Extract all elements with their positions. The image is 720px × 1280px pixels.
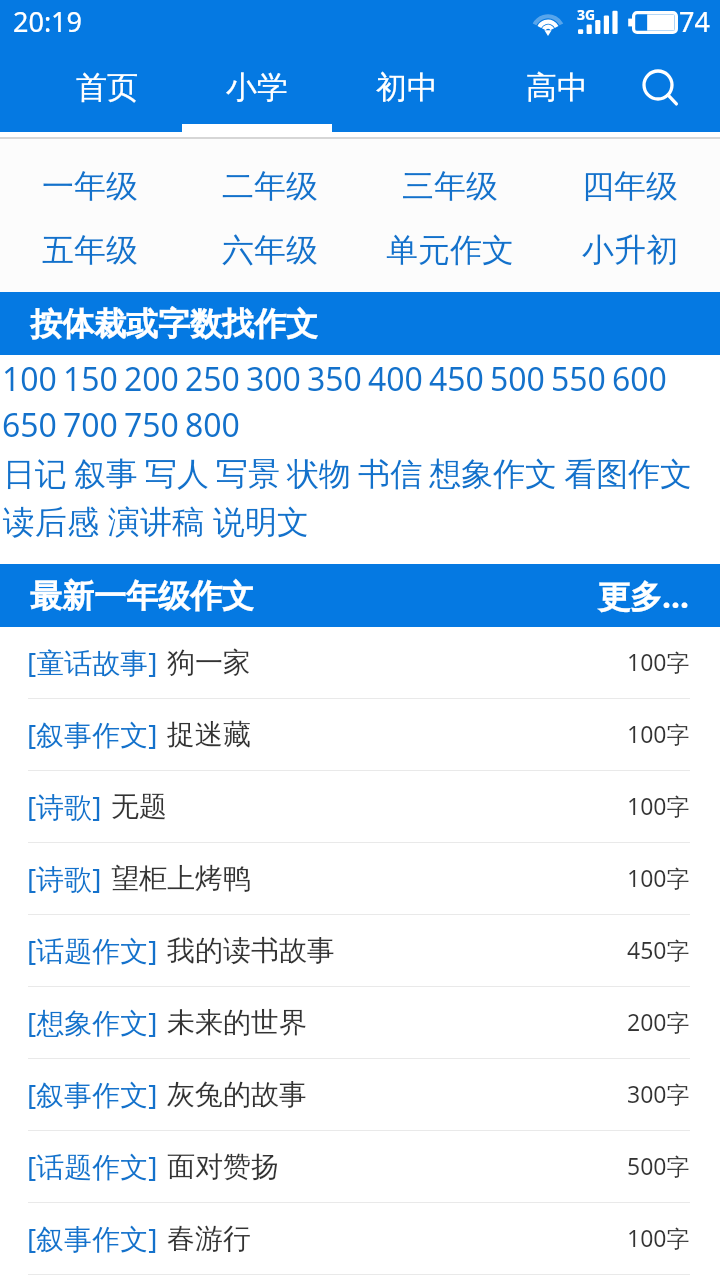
staticText: 四年级 xyxy=(582,166,678,206)
staticText: 最新一年级作文 xyxy=(30,576,254,616)
staticText: 600 xyxy=(612,357,667,401)
staticText: [话题作文] xyxy=(27,931,158,969)
button[interactable]: 小学 xyxy=(182,50,332,132)
button[interactable]: [诗歌] xyxy=(0,771,720,843)
staticText: 写人 xyxy=(145,454,209,494)
button[interactable]: 500 xyxy=(490,357,545,401)
button[interactable]: 100 xyxy=(2,357,57,401)
staticText: 写景 xyxy=(216,454,280,494)
button[interactable]: [叙事作文] xyxy=(0,1059,720,1131)
button[interactable]: 单元作文 xyxy=(360,218,540,282)
staticText: 450字 xyxy=(627,934,690,965)
button[interactable]: 350 xyxy=(307,357,362,401)
staticText: 250 xyxy=(185,357,240,401)
staticText: 演讲稿 xyxy=(108,502,204,542)
staticText: 300字 xyxy=(627,1078,690,1109)
staticText: 五年级 xyxy=(42,230,138,270)
button[interactable]: 想象作文 xyxy=(429,454,557,494)
staticText: 春游行 xyxy=(167,1221,251,1256)
staticText: [叙事作文] xyxy=(27,1219,158,1257)
staticText: 650 xyxy=(2,403,57,447)
button[interactable]: 四年级 xyxy=(540,154,720,218)
button[interactable]: 读后感 xyxy=(3,502,99,542)
button[interactable]: 700 xyxy=(63,403,118,447)
button[interactable]: 叙事 xyxy=(74,454,138,494)
button[interactable]: 初中 xyxy=(332,50,482,132)
button[interactable]: 看图作文 xyxy=(564,454,692,494)
button[interactable]: [话题作文] xyxy=(0,1131,720,1203)
button[interactable]: 一年级 xyxy=(0,154,180,218)
button[interactable]: 三年级 xyxy=(360,154,540,218)
staticText: 捉迷藏 xyxy=(167,717,251,752)
staticText: 六年级 xyxy=(222,230,318,270)
staticText: 800 xyxy=(185,403,240,447)
staticText: 三年级 xyxy=(402,166,498,206)
button[interactable]: 首页 xyxy=(32,50,182,132)
staticText: 一年级 xyxy=(42,166,138,206)
button[interactable]: 写景 xyxy=(216,454,280,494)
button[interactable]: 300 xyxy=(246,357,301,401)
staticText: 想象作文 xyxy=(429,454,557,494)
staticText: 450 xyxy=(429,357,484,401)
staticText: 灰兔的故事 xyxy=(167,1077,307,1112)
button[interactable]: [诗歌] xyxy=(0,843,720,915)
staticText: 狗一家 xyxy=(167,645,251,680)
button[interactable]: 高中 xyxy=(482,50,632,132)
button[interactable]: 150 xyxy=(63,357,118,401)
staticText: 200 xyxy=(124,357,179,401)
button[interactable]: 日记 xyxy=(3,454,67,494)
staticText: 150 xyxy=(63,357,118,401)
staticText: 初中 xyxy=(376,68,438,107)
staticText: [想象作文] xyxy=(27,1003,158,1041)
button[interactable]: 800 xyxy=(185,403,240,447)
staticText: [诗歌] xyxy=(27,859,102,897)
button[interactable]: 写人 xyxy=(145,454,209,494)
staticText: 100字 xyxy=(627,790,690,821)
button[interactable]: [叙事作文] xyxy=(0,1203,720,1275)
button[interactable]: 200 xyxy=(124,357,179,401)
staticText: 单元作文 xyxy=(386,230,514,270)
button[interactable]: 最新一年级作文 xyxy=(0,564,720,627)
button[interactable]: 六年级 xyxy=(180,218,360,282)
button[interactable]: 750 xyxy=(124,403,179,447)
button[interactable]: 按体裁或字数找作文 xyxy=(0,292,720,355)
staticText: 首页 xyxy=(76,68,138,107)
button[interactable]: [童话故事] xyxy=(0,627,720,699)
staticText: [诗歌] xyxy=(27,787,102,825)
staticText: [话题作文] xyxy=(27,1147,158,1185)
button[interactable]: 演讲稿 xyxy=(108,502,204,542)
button[interactable]: 550 xyxy=(551,357,606,401)
staticText: 100 xyxy=(2,357,57,401)
button[interactable]: 小升初 xyxy=(540,218,720,282)
button[interactable]: Search xyxy=(618,50,702,132)
staticText: 读后感 xyxy=(3,502,99,542)
staticText: 100字 xyxy=(627,862,690,893)
staticText: 二年级 xyxy=(222,166,318,206)
staticText: 叙事 xyxy=(74,454,138,494)
staticText: 更多... xyxy=(598,574,689,618)
staticText: 状物 xyxy=(287,454,351,494)
staticText: 望柜上烤鸭 xyxy=(111,861,251,896)
staticText: 500 xyxy=(490,357,545,401)
button[interactable]: 600 xyxy=(612,357,667,401)
button[interactable]: 书信 xyxy=(358,454,422,494)
staticText: 550 xyxy=(551,357,606,401)
button[interactable]: 说明文 xyxy=(213,502,309,542)
button[interactable]: 250 xyxy=(185,357,240,401)
staticText: 100字 xyxy=(627,1222,690,1253)
staticText: 面对赞扬 xyxy=(167,1149,279,1184)
staticText: 200字 xyxy=(627,1006,690,1037)
staticText: 无题 xyxy=(111,789,167,824)
button[interactable]: 650 xyxy=(2,403,57,447)
button[interactable]: 400 xyxy=(368,357,423,401)
button[interactable]: 状物 xyxy=(287,454,351,494)
button[interactable]: [话题作文] xyxy=(0,915,720,987)
button[interactable]: 五年级 xyxy=(0,218,180,282)
button[interactable]: 450 xyxy=(429,357,484,401)
staticText: 750 xyxy=(124,403,179,447)
button[interactable]: [叙事作文] xyxy=(0,699,720,771)
button[interactable]: [想象作文] xyxy=(0,987,720,1059)
staticText: 小升初 xyxy=(582,230,678,270)
button[interactable]: 二年级 xyxy=(180,154,360,218)
staticText: 按体裁或字数找作文 xyxy=(30,304,318,344)
